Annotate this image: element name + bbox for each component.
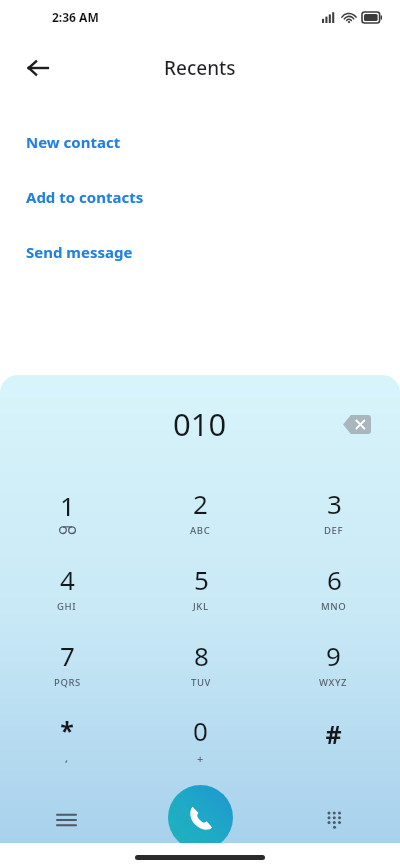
- button[interactable]: 7: [0, 625, 134, 701]
- button[interactable]: 1: [0, 473, 134, 549]
- staticText: MNO: [321, 600, 347, 613]
- button[interactable]: New contact: [0, 114, 400, 169]
- staticText: 9: [326, 638, 341, 673]
- staticText: 010: [173, 403, 227, 445]
- staticText: #: [325, 717, 342, 751]
- button[interactable]: 9: [267, 625, 400, 701]
- button[interactable]: Back: [16, 46, 60, 90]
- staticText: ABC: [190, 524, 211, 537]
- button[interactable]: Dialpad: [312, 798, 356, 842]
- staticText: +: [197, 751, 204, 766]
- staticText: 8: [194, 638, 209, 673]
- button[interactable]: 4: [0, 549, 134, 625]
- button[interactable]: More options: [44, 798, 88, 842]
- staticText: 0: [193, 713, 208, 748]
- button[interactable]: 0: [134, 701, 267, 777]
- button[interactable]: 3: [267, 473, 400, 549]
- staticText: 1: [60, 488, 75, 523]
- staticText: 6: [327, 562, 342, 597]
- staticText: Add to contacts: [26, 187, 144, 207]
- button[interactable]: Backspace: [336, 403, 378, 445]
- staticText: 2:36 AM: [52, 9, 99, 25]
- staticText: JKL: [193, 600, 209, 613]
- button[interactable]: 2: [134, 473, 267, 549]
- staticText: 5: [194, 562, 209, 597]
- staticText: Send message: [26, 242, 133, 262]
- staticText: New contact: [26, 132, 121, 152]
- staticText: ,: [65, 750, 69, 765]
- staticText: Recents: [164, 55, 236, 81]
- staticText: DEF: [324, 524, 344, 537]
- staticText: 3: [327, 486, 342, 521]
- staticText: 7: [60, 638, 75, 673]
- button[interactable]: 5: [134, 549, 267, 625]
- button[interactable]: 6: [267, 549, 400, 625]
- staticText: PQRS: [54, 676, 81, 689]
- staticText: GHI: [57, 600, 77, 613]
- staticText: WXYZ: [319, 676, 348, 689]
- button[interactable]: #: [267, 701, 400, 777]
- button[interactable]: Send message: [0, 224, 400, 279]
- staticText: TUV: [191, 676, 211, 689]
- staticText: 2: [193, 486, 208, 521]
- staticText: *: [60, 713, 74, 747]
- staticText: 4: [60, 562, 75, 597]
- button[interactable]: Call: [168, 785, 233, 843]
- button[interactable]: 8: [134, 625, 267, 701]
- button[interactable]: Add to contacts: [0, 169, 400, 224]
- button[interactable]: *: [0, 701, 134, 777]
